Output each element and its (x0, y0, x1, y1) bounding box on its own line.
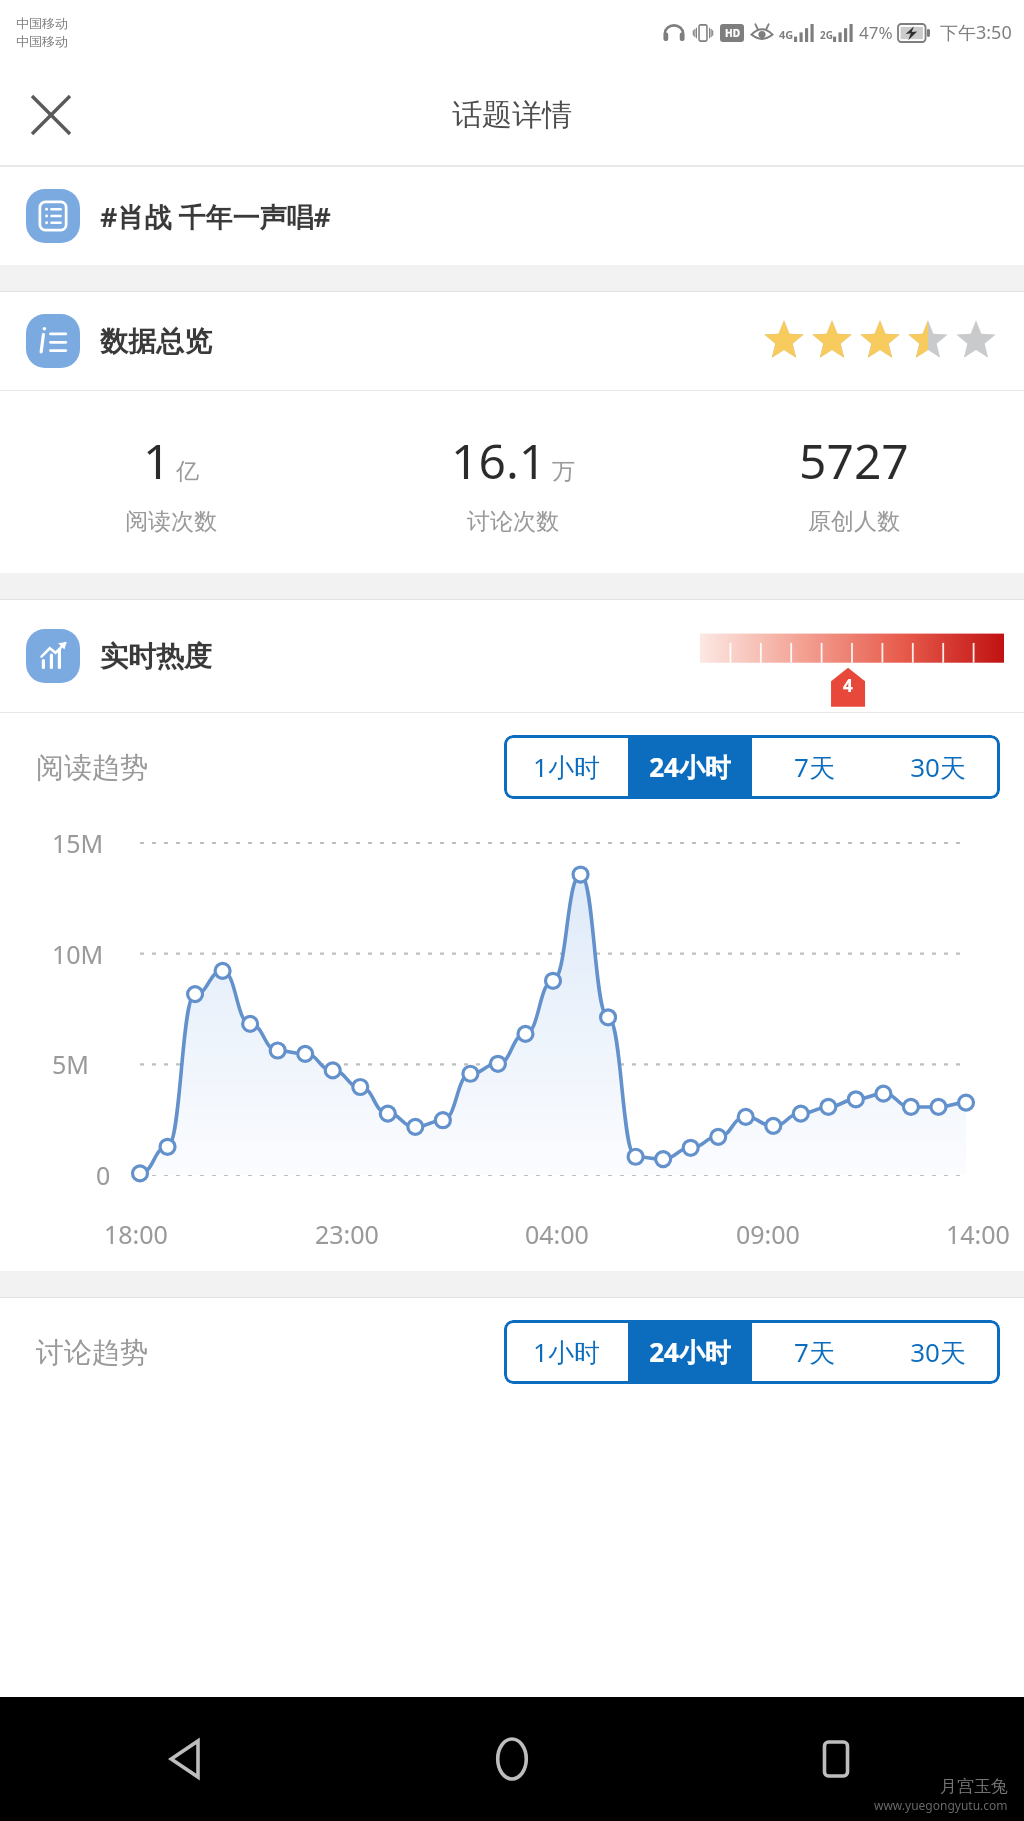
staticText: 阅读次数 (125, 507, 217, 536)
staticText: 30天 (910, 1334, 966, 1370)
staticText: 24小时 (649, 749, 731, 785)
staticText: 7天 (794, 749, 835, 785)
staticText: 14:00 (946, 1217, 1010, 1251)
staticText: 4G (779, 27, 794, 42)
staticText: 讨论趋势 (36, 1335, 148, 1370)
staticText: 4 (843, 674, 853, 697)
button[interactable]: Back (150, 1721, 226, 1797)
button[interactable]: Home (474, 1721, 550, 1797)
button[interactable]: 7天 (752, 1320, 876, 1384)
button[interactable]: 7天 (752, 735, 876, 799)
staticText: 下午3:50 (940, 20, 1012, 45)
staticText: HD (725, 26, 740, 40)
staticText: 5M (52, 1047, 89, 1081)
staticText: 5727 (799, 428, 909, 493)
button[interactable]: 1小时 (504, 735, 628, 799)
staticText: #肖战 千年一声唱# (100, 198, 331, 235)
staticText: 中国移动 (16, 15, 68, 31)
staticText: 1小时 (533, 749, 600, 785)
staticText: 04:00 (525, 1217, 589, 1251)
staticText: 月宫玉兔 (940, 1776, 1008, 1797)
button[interactable]: 30天 (876, 735, 1000, 799)
button[interactable]: 30天 (876, 1320, 1000, 1384)
staticText: 10M (52, 937, 104, 971)
button[interactable]: 24小时 (628, 1320, 752, 1384)
staticText: 23:00 (315, 1217, 379, 1251)
button[interactable]: 1小时 (504, 1320, 628, 1384)
staticText: 2G (820, 28, 833, 42)
staticText: 1小时 (533, 1334, 600, 1370)
button[interactable]: #肖战 千年一声唱# (0, 167, 1024, 265)
staticText: 1 (143, 428, 171, 493)
staticText: 数据总览 (100, 324, 212, 359)
button[interactable]: Recents (798, 1721, 874, 1797)
staticText: 阅读趋势 (36, 750, 148, 785)
staticText: 7天 (794, 1334, 835, 1370)
button[interactable]: 24小时 (628, 735, 752, 799)
staticText: 47% (859, 21, 893, 44)
staticText: 讨论次数 (467, 507, 559, 536)
staticText: 30天 (910, 749, 966, 785)
staticText: 原创人数 (808, 507, 900, 536)
staticText: 18:00 (104, 1217, 168, 1251)
staticText: 24小时 (649, 1334, 731, 1370)
staticText: 中国移动 (16, 33, 68, 49)
staticText: 实时热度 (100, 639, 212, 674)
staticText: 话题详情 (452, 96, 572, 134)
staticText: 09:00 (736, 1217, 800, 1251)
staticText: 万 (552, 457, 575, 486)
staticText: www.yuegongyutu.com (874, 1797, 1008, 1813)
staticText: 15M (52, 826, 104, 860)
staticText: 0 (96, 1158, 111, 1192)
staticText: 16.1 (451, 428, 547, 493)
staticText: 亿 (176, 457, 199, 486)
button[interactable]: Close (20, 84, 82, 146)
